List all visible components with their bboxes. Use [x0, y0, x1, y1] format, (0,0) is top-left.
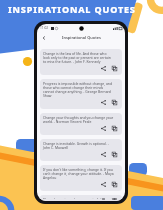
staticText: 11:02	[40, 26, 49, 30]
staticText: If you don't like something, change it. …	[43, 167, 114, 180]
staticText: INSPIRATIONAL QUOTES	[8, 3, 136, 15]
button[interactable]: Copy	[110, 64, 119, 73]
staticText: Change your thoughts and you change your…	[43, 115, 114, 124]
button[interactable]: Change is the law of life. And those who…	[40, 49, 122, 75]
button[interactable]: Copy	[110, 180, 119, 189]
staticText: Inspirational Quotes	[62, 35, 101, 40]
button[interactable]: Back	[39, 33, 48, 42]
button[interactable]: Change your thoughts and you change your…	[40, 113, 122, 135]
staticText: Change is the law of life. And those who…	[43, 51, 114, 64]
button[interactable]: Share	[99, 150, 108, 159]
button[interactable]: Change is inevitable. Growth is optional…	[40, 139, 122, 161]
button[interactable]: Copy	[110, 124, 119, 133]
staticText: Progress is impossible without change, a…	[43, 81, 114, 98]
button[interactable]: If you don't like something, change it. …	[40, 165, 122, 191]
button[interactable]: Copy	[110, 150, 119, 159]
button[interactable]: Share	[99, 124, 108, 133]
staticText: Change is inevitable. Growth is optional…	[43, 141, 114, 150]
button[interactable]: Share	[99, 180, 108, 189]
button[interactable]: Copy	[110, 98, 119, 107]
button[interactable]: Share	[99, 98, 108, 107]
staticText: The only way to make sense out of change…	[43, 197, 114, 199]
button[interactable]: Share	[99, 64, 108, 73]
button[interactable]: The only way to make sense out of change…	[40, 195, 122, 201]
button[interactable]: Progress is impossible without change, a…	[40, 79, 122, 109]
